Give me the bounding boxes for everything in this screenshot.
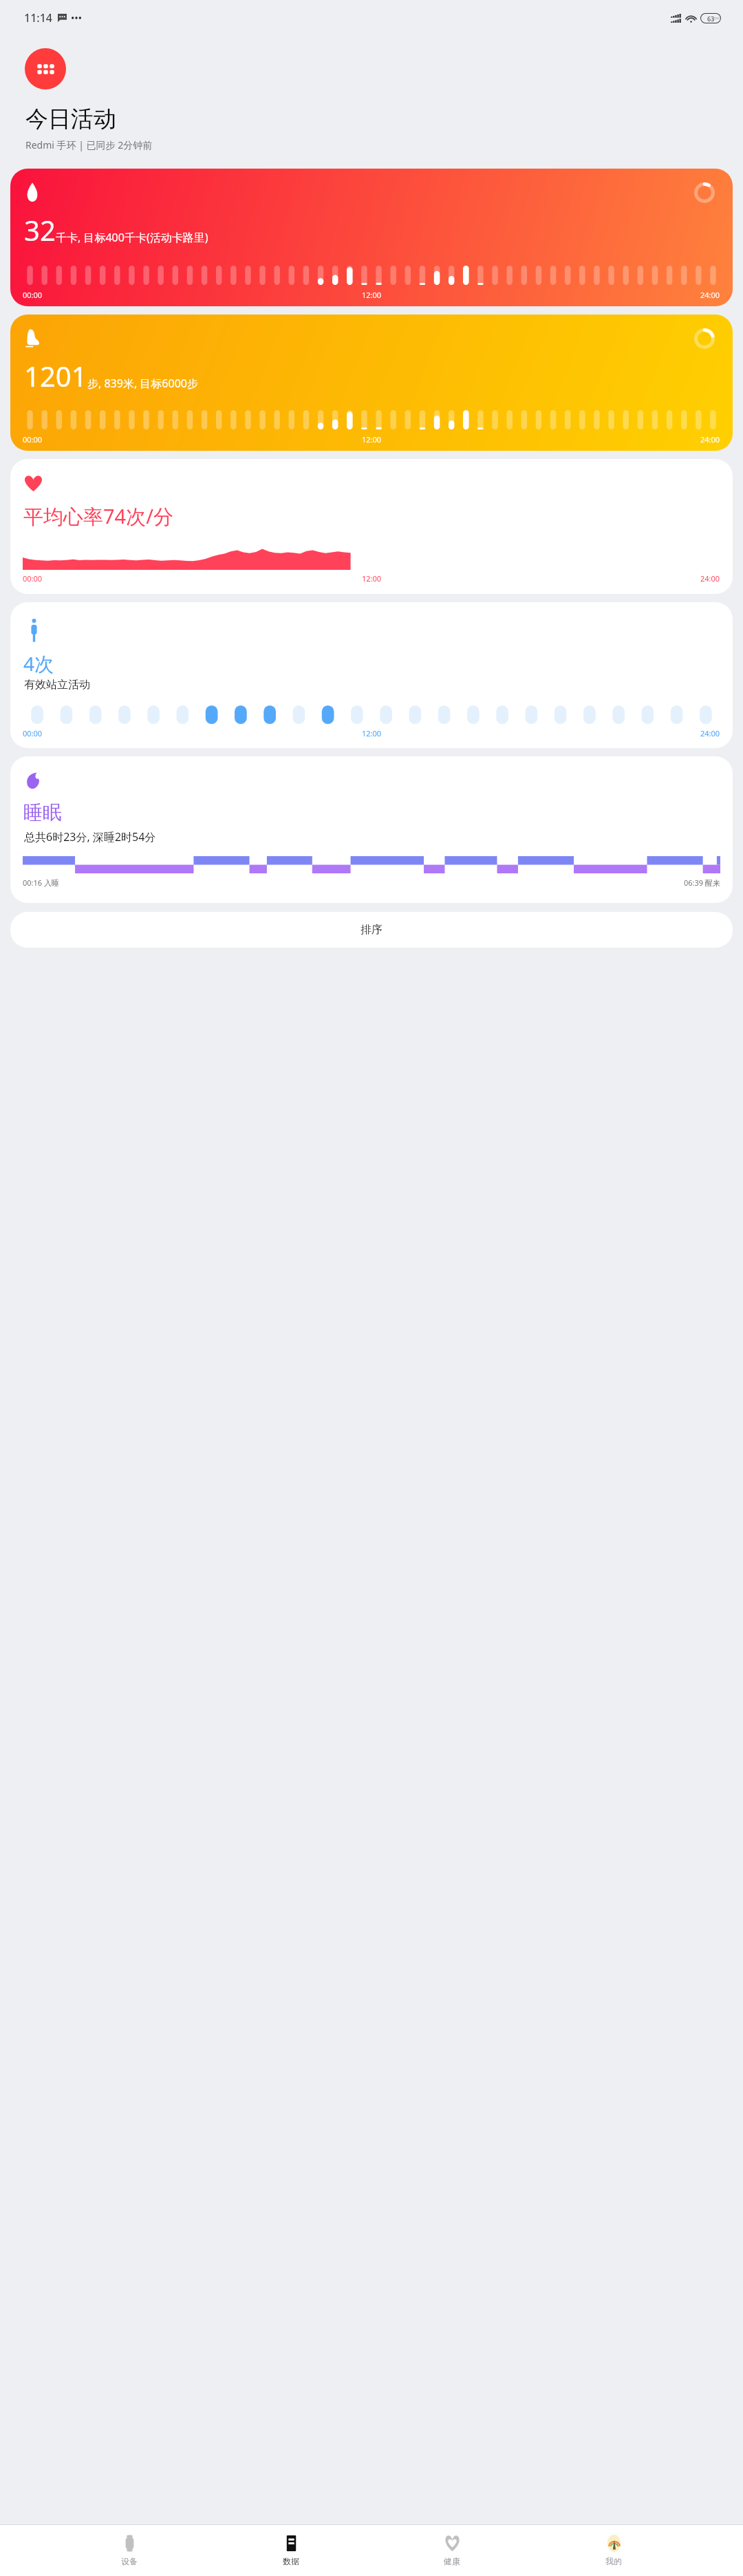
button[interactable]: 32 (10, 169, 733, 306)
staticText: 睡眠 (23, 800, 62, 824)
staticText: 00:16 入睡 (23, 877, 59, 888)
button[interactable]: Apps (25, 48, 66, 89)
staticText: 24:00 (700, 573, 720, 584)
button[interactable]: 4次 (10, 602, 733, 748)
staticText: 00:00 (23, 434, 43, 445)
staticText: Redmi 手环 | 已同步 2分钟前 (25, 138, 153, 151)
button[interactable]: 平均心率74次/分 (10, 459, 733, 594)
staticText: 32 (24, 211, 56, 248)
staticText: 12:00 (362, 434, 382, 445)
staticText: 我的 (605, 2556, 622, 2566)
staticText: 00:00 (23, 573, 43, 584)
staticText: 数据 (283, 2556, 299, 2566)
staticText: 06:39 醒来 (684, 877, 720, 888)
staticText: 24:00 (700, 290, 720, 300)
staticText: 千卡, 目标400千卡(活动卡路里) (56, 230, 208, 245)
staticText: 1201 (24, 357, 87, 394)
staticText: 排序 (360, 923, 383, 937)
staticText: 12:00 (362, 290, 382, 300)
staticText: 设备 (121, 2556, 138, 2566)
staticText: 11:14 (24, 10, 52, 25)
button[interactable]: 数据 (259, 2525, 323, 2576)
staticText: 63 (707, 14, 715, 23)
button[interactable]: 睡眠 (10, 756, 733, 903)
staticText: 24:00 (700, 434, 720, 445)
button[interactable]: 设备 (97, 2525, 162, 2576)
staticText: 12:00 (362, 728, 382, 738)
staticText: 平均心率74次/分 (23, 502, 173, 530)
staticText: 24:00 (700, 728, 720, 738)
button[interactable]: 1201 (10, 315, 733, 451)
staticText: 总共6时23分, 深睡2时54分 (24, 829, 156, 844)
staticText: 00:00 (23, 290, 43, 300)
staticText: 4次 (23, 650, 54, 677)
staticText: 步, 839米, 目标6000步 (87, 376, 198, 391)
button[interactable]: 健康 (420, 2525, 484, 2576)
button[interactable]: 排序 (10, 912, 733, 948)
staticText: 有效站立活动 (24, 678, 90, 692)
staticText: 今日活动 (25, 105, 116, 134)
staticText: 00:00 (23, 728, 43, 738)
button[interactable]: 我的 (581, 2525, 646, 2576)
staticText: 健康 (444, 2556, 460, 2566)
staticText: 12:00 (362, 573, 382, 584)
